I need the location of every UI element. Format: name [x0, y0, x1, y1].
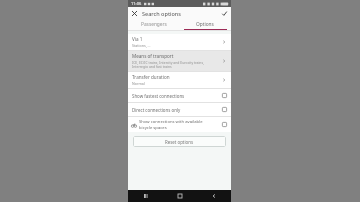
staticText: Show fastest connections: [132, 93, 222, 99]
button[interactable]: Options: [179, 19, 231, 30]
button[interactable]: Home: [163, 190, 197, 202]
button[interactable]: Show fastest connections: [128, 89, 231, 102]
staticText: Search options: [142, 10, 181, 17]
staticText: Via 1: [132, 36, 143, 42]
staticText: Stations, ...: [132, 43, 151, 48]
button[interactable]: Reset options: [133, 136, 226, 147]
button[interactable]: Apply: [218, 7, 230, 19]
staticText: 11:06: [131, 1, 142, 6]
staticText: Reset options: [165, 139, 194, 145]
staticText: Transfer duration: [132, 74, 170, 80]
button[interactable]: Direct connections only: [128, 103, 231, 116]
staticText: Normal: [132, 81, 145, 86]
staticText: Direct connections only: [132, 107, 222, 113]
staticText: ICE, EC/IC trains, Intercity and Eurocit…: [132, 60, 204, 69]
button[interactable]: Show connections with available bicycle …: [128, 117, 231, 132]
button[interactable]: Back: [197, 190, 231, 202]
button[interactable]: Passengers: [128, 19, 179, 30]
staticText: Show connections with available bicycle …: [139, 119, 222, 130]
button[interactable]: Transfer duration: [128, 72, 231, 88]
button[interactable]: Means of transport: [128, 51, 231, 71]
button[interactable]: Recents: [128, 190, 163, 202]
staticText: Passengers: [141, 21, 167, 28]
staticText: Means of transport: [132, 53, 174, 59]
button[interactable]: Close: [128, 7, 140, 19]
staticText: Options: [196, 21, 214, 28]
button[interactable]: Via 1: [128, 34, 231, 50]
